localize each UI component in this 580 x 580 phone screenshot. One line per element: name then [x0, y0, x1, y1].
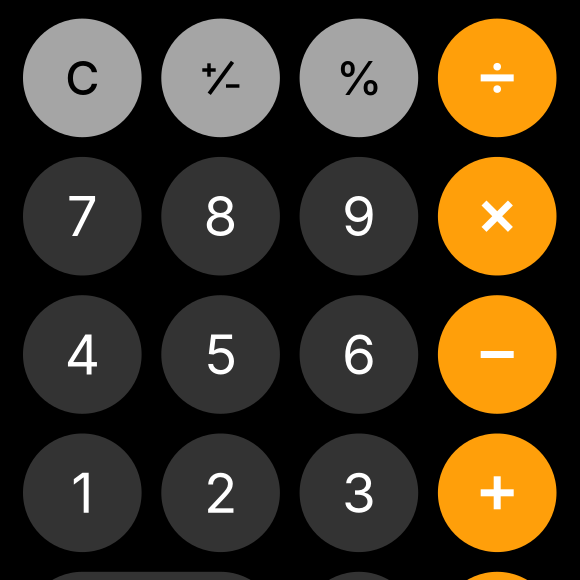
- button[interactable]: Equals: [438, 572, 556, 580]
- staticText: 3: [342, 460, 376, 526]
- button[interactable]: 1: [23, 433, 142, 552]
- button[interactable]: .: [300, 572, 418, 580]
- staticText: C: [65, 50, 99, 106]
- button[interactable]: Toggle sign: [161, 19, 280, 137]
- button[interactable]: Add: [438, 433, 556, 552]
- button[interactable]: 0: [23, 572, 280, 580]
- staticText: 6: [342, 321, 376, 387]
- button[interactable]: 7: [23, 157, 142, 275]
- button[interactable]: C: [23, 19, 142, 137]
- staticText: 9: [342, 183, 376, 249]
- button[interactable]: 9: [300, 157, 418, 275]
- button[interactable]: %: [300, 19, 418, 137]
- staticText: 7: [67, 183, 98, 249]
- button[interactable]: 4: [23, 295, 142, 414]
- staticText: 2: [204, 460, 237, 526]
- button[interactable]: 8: [161, 157, 280, 275]
- button[interactable]: 6: [300, 295, 418, 414]
- staticText: 4: [65, 321, 100, 387]
- button[interactable]: Subtract: [438, 295, 556, 414]
- staticText: 8: [204, 183, 238, 249]
- button[interactable]: Divide: [438, 19, 556, 137]
- staticText: 5: [204, 321, 237, 387]
- button[interactable]: 2: [161, 433, 280, 552]
- button[interactable]: 3: [300, 433, 418, 552]
- button[interactable]: 5: [161, 295, 280, 414]
- staticText: 1: [71, 460, 93, 526]
- button[interactable]: Multiply: [438, 157, 556, 275]
- staticText: %: [336, 50, 382, 106]
